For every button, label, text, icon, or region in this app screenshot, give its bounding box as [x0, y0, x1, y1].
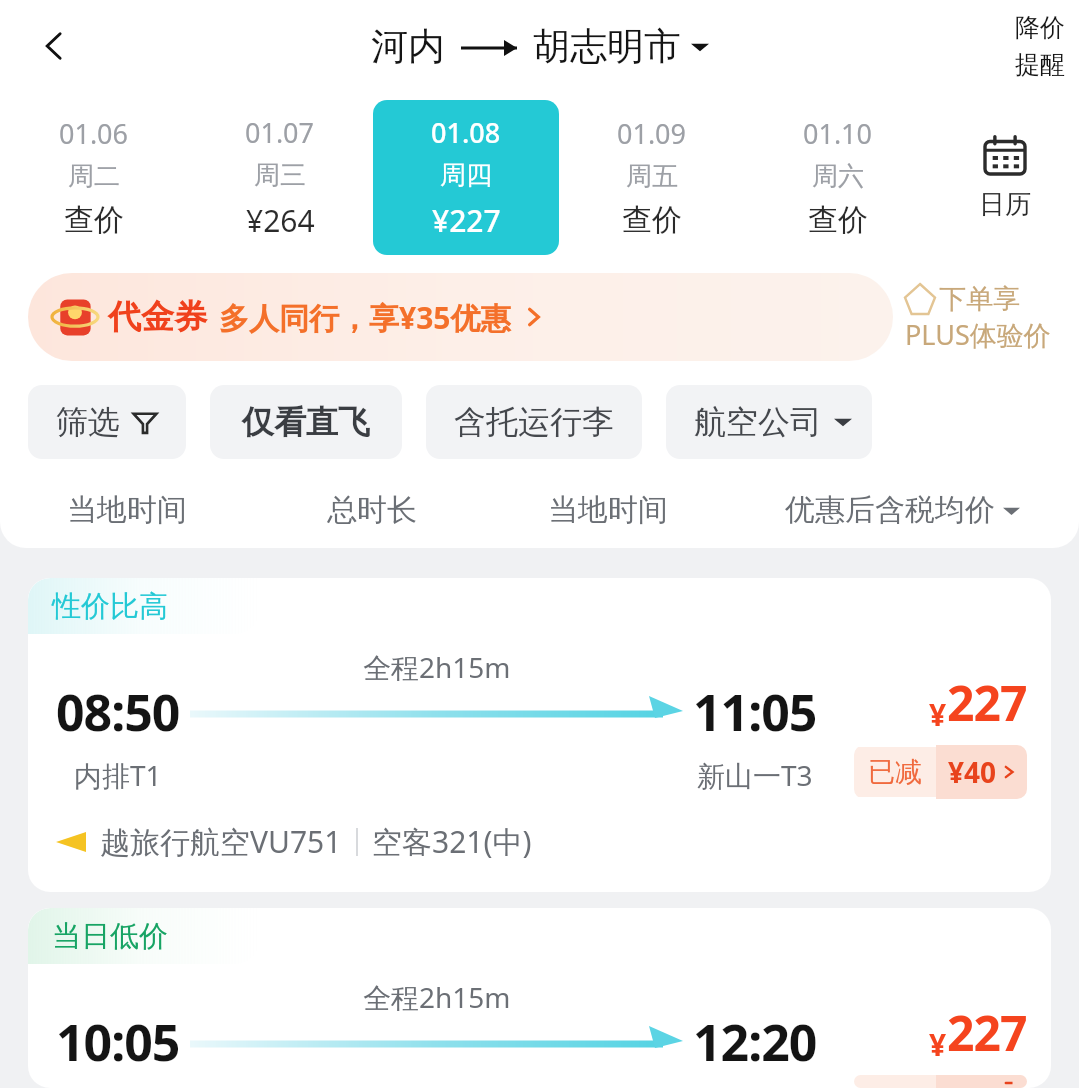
staticText: 已减 [868, 755, 922, 789]
button[interactable]: 01.09 [559, 97, 745, 257]
staticText: 10:05 [56, 1008, 180, 1076]
staticText: 全程2h15m [363, 648, 511, 686]
button[interactable]: 01.10 [745, 97, 931, 257]
staticText: 查价 [808, 201, 868, 239]
staticText: 当日低价 [52, 918, 168, 955]
staticText: 08:50 [56, 678, 180, 746]
button[interactable]: 当日低价 [28, 908, 1051, 1088]
button[interactable]: 当地时间 [0, 472, 254, 548]
staticText: 胡志明市 [533, 23, 681, 70]
button[interactable]: 代金券 [28, 273, 893, 361]
staticText: 227 [947, 670, 1027, 735]
button[interactable]: 01.07 [187, 96, 373, 259]
staticText: 01.07 [245, 114, 315, 151]
staticText: 11:05 [693, 678, 817, 746]
staticText: 周二 [68, 160, 120, 193]
staticText: 代金券 [108, 296, 207, 338]
button[interactable]: 日历 [931, 92, 1079, 262]
staticText: 查价 [622, 201, 682, 239]
button[interactable]: 01.06 [0, 97, 187, 257]
staticText: 降价 [1015, 12, 1065, 43]
button[interactable]: 含托运行李 [426, 385, 642, 459]
staticText: 01.06 [59, 115, 129, 152]
staticText: ¥ [929, 1024, 947, 1065]
staticText: 筛选 [56, 402, 120, 442]
button[interactable]: 优惠后含税均价 [726, 472, 1079, 548]
button[interactable]: 01.08 [373, 100, 559, 255]
button[interactable]: 航空公司 [666, 385, 872, 459]
button[interactable]: 河内 [371, 23, 709, 70]
staticText: 01.10 [803, 115, 873, 152]
staticText: 周四 [440, 159, 492, 192]
staticText: 全程2h15m [363, 978, 511, 1016]
staticText: 多人同行，享¥35优惠 [219, 297, 511, 338]
staticText: 总时长 [327, 491, 417, 529]
staticText: PLUS体验价 [905, 316, 1051, 353]
button[interactable]: 降价 [1015, 12, 1065, 80]
staticText: 当地时间 [67, 491, 187, 529]
staticText: 01.09 [617, 115, 687, 152]
staticText: 仅看直飞 [242, 402, 370, 442]
button[interactable]: 筛选 [28, 385, 186, 459]
staticText: 周六 [812, 160, 864, 193]
staticText: 日历 [979, 188, 1031, 221]
staticText: ¥ [929, 694, 947, 735]
staticText: 周五 [626, 160, 678, 193]
staticText: 提醒 [1015, 49, 1065, 80]
staticText: 越旅行航空VU751 [100, 821, 342, 862]
button[interactable]: 已减 [854, 745, 1027, 799]
staticText: 227 [947, 1000, 1027, 1065]
staticText: 查价 [64, 201, 124, 239]
staticText: 航空公司 [694, 402, 822, 442]
staticText: 01.08 [431, 114, 501, 151]
staticText: ¥227 [432, 200, 501, 241]
button[interactable]: 性价比高 [28, 578, 1051, 892]
button[interactable]: 仅看直飞 [210, 385, 402, 459]
staticText: 河内 [371, 23, 445, 70]
staticText: 下单享 [939, 282, 1020, 316]
button[interactable]: 当地时间 [490, 472, 726, 548]
staticText: 优惠后含税均价 [785, 491, 995, 529]
staticText: ¥264 [246, 200, 315, 241]
staticText: 内排T1 [74, 756, 162, 794]
staticText: 当地时间 [548, 491, 668, 529]
button[interactable]: 下单享 [905, 282, 1051, 353]
staticText: 新山一T3 [697, 756, 813, 794]
staticText: ¥40 [948, 753, 997, 791]
staticText: 含托运行李 [454, 402, 614, 442]
staticText: 12:20 [693, 1008, 817, 1076]
button[interactable]: Back [26, 18, 82, 74]
button[interactable]: 总时长 [254, 472, 490, 548]
staticText: 空客321(中) [372, 821, 532, 862]
staticText: 周三 [254, 159, 306, 192]
button[interactable]: 已减 [854, 1075, 1027, 1088]
staticText: 性价比高 [52, 588, 168, 625]
